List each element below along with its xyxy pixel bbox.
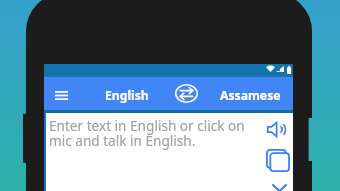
button[interactable]: Copy — [264, 146, 292, 174]
button[interactable]: Listen — [263, 115, 291, 143]
button[interactable]: Expand — [265, 176, 293, 191]
button[interactable]: Swap languages — [173, 80, 199, 106]
button[interactable]: Assamese — [210, 77, 290, 113]
button[interactable]: Menu — [50, 81, 72, 109]
staticText: Assamese — [220, 87, 281, 104]
staticText: English — [105, 87, 149, 104]
button[interactable]: English — [95, 77, 159, 113]
staticText: Enter text in English or click on mic an… — [49, 116, 249, 150]
